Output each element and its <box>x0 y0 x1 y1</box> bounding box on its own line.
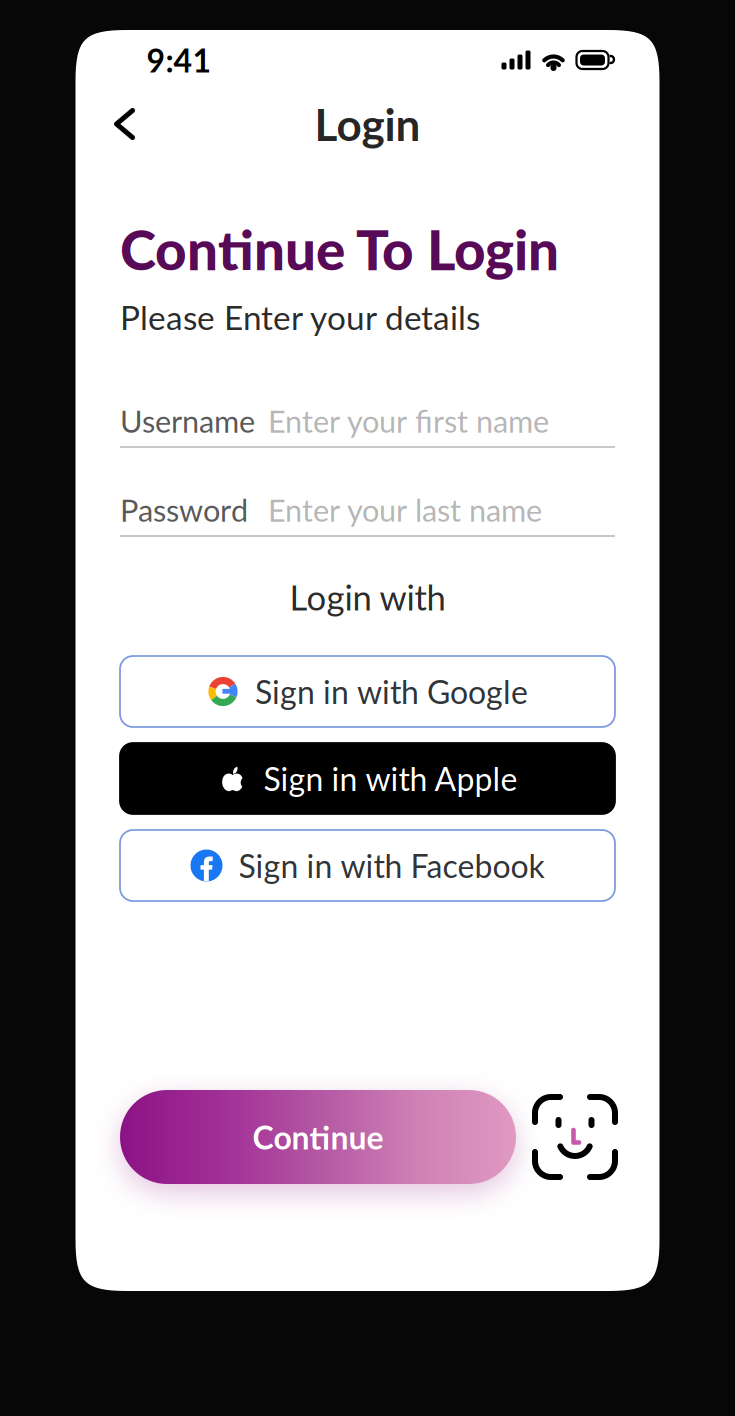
button[interactable]: Sign in with Google <box>120 656 615 727</box>
staticText: Sign in with Apple <box>263 759 517 798</box>
staticText: Continue <box>252 1118 383 1156</box>
staticText: Enter your first name <box>268 403 549 439</box>
button[interactable]: Sign in with Facebook <box>120 830 615 901</box>
button[interactable]: Face ID <box>535 1097 615 1177</box>
staticText: Sign in with Google <box>255 672 528 711</box>
staticText: Please Enter your details <box>120 297 480 337</box>
staticText: Login <box>314 98 420 150</box>
staticText: Continue To Login <box>120 216 559 282</box>
staticText: 9:41 <box>146 41 211 79</box>
staticText: Username <box>120 403 255 439</box>
staticText: Login with <box>289 576 445 618</box>
staticText: Sign in with Facebook <box>238 846 544 885</box>
button[interactable]: Back <box>96 96 152 152</box>
button[interactable]: Continue <box>120 1090 516 1184</box>
staticText: Enter your last name <box>268 492 542 528</box>
staticText: Password <box>120 492 248 528</box>
button[interactable]: Sign in with Apple <box>120 743 615 814</box>
